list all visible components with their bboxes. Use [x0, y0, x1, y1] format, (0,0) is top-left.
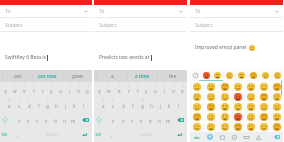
button[interactable]	[231, 92, 244, 102]
button[interactable]: b	[146, 112, 155, 127]
button[interactable]: z	[108, 112, 118, 127]
button[interactable]: Enter	[171, 127, 187, 142]
button[interactable]	[231, 81, 244, 92]
button[interactable]	[204, 92, 218, 102]
button[interactable]	[257, 122, 270, 132]
button[interactable]: #	[108, 97, 118, 112]
button[interactable]: 123	[0, 127, 9, 142]
button[interactable]	[244, 112, 257, 122]
button[interactable]: &	[43, 97, 52, 112]
button[interactable]: English	[121, 127, 171, 142]
button[interactable]: abc	[190, 132, 203, 142]
button[interactable]: 6	[142, 82, 151, 97]
button[interactable]	[218, 92, 231, 102]
button[interactable]: 7	[56, 82, 65, 97]
button[interactable]: Backspace	[78, 112, 92, 127]
button[interactable]	[231, 122, 244, 132]
button[interactable]	[270, 102, 283, 112]
button[interactable]: Category 2	[216, 132, 228, 142]
button[interactable]	[270, 81, 283, 92]
button[interactable]: n	[155, 112, 164, 127]
button[interactable]	[257, 112, 270, 122]
button[interactable]: c	[128, 112, 137, 127]
button[interactable]	[257, 92, 270, 102]
button[interactable]: Subject	[0, 18, 92, 32]
button[interactable]	[244, 122, 257, 132]
button[interactable]	[244, 102, 257, 112]
button[interactable]: Category 4	[240, 132, 252, 142]
button[interactable]: out	[3, 70, 32, 82]
button[interactable]: n	[60, 112, 69, 127]
button[interactable]	[231, 112, 244, 122]
button[interactable]: Backspace	[271, 132, 283, 142]
button[interactable]: 1	[94, 82, 104, 97]
button[interactable]: b	[51, 112, 60, 127]
button[interactable]	[201, 69, 212, 81]
button[interactable]: -	[147, 97, 156, 112]
button[interactable]: k	[70, 97, 79, 112]
button[interactable]	[204, 112, 218, 122]
button[interactable]: +	[61, 97, 70, 112]
button[interactable]	[204, 102, 218, 112]
button[interactable]: z	[14, 112, 24, 127]
button[interactable]: _	[34, 97, 43, 112]
button[interactable]: Smileys	[203, 132, 216, 142]
button[interactable]: 4	[124, 82, 133, 97]
button[interactable]: 3	[20, 82, 29, 97]
button[interactable]: l	[174, 97, 183, 112]
button[interactable]: 2	[10, 82, 20, 97]
button[interactable]: Enter	[76, 127, 92, 142]
button[interactable]: Category 3	[228, 132, 240, 142]
button[interactable]	[270, 112, 283, 122]
button[interactable]: Shift	[0, 112, 10, 127]
button[interactable]: 3	[114, 82, 124, 97]
button[interactable]: 2	[104, 82, 114, 97]
button[interactable]: To	[0, 5, 92, 18]
button[interactable]: l	[79, 97, 88, 112]
button[interactable]: English	[27, 127, 76, 142]
button[interactable]: m	[164, 112, 173, 127]
button[interactable]: 5	[38, 82, 47, 97]
button[interactable]: k	[165, 97, 174, 112]
button[interactable]: a	[97, 70, 127, 82]
button[interactable]: Backspace	[173, 112, 187, 127]
button[interactable]: 123	[94, 127, 103, 142]
button[interactable]: $	[118, 97, 128, 112]
button[interactable]	[190, 81, 204, 92]
button[interactable]: Shift	[94, 112, 104, 127]
button[interactable]: great	[63, 70, 92, 82]
button[interactable]: 8	[160, 82, 169, 97]
button[interactable]	[223, 69, 235, 81]
button[interactable]: a time	[128, 70, 157, 82]
button[interactable]: 8	[65, 82, 74, 97]
button[interactable]: 7	[151, 82, 160, 97]
button[interactable]: 4	[29, 82, 38, 97]
button[interactable]: -	[52, 97, 61, 112]
button[interactable]	[218, 102, 231, 112]
button[interactable]	[212, 69, 223, 81]
button[interactable]: +	[156, 97, 165, 112]
button[interactable]: 5	[133, 82, 142, 97]
button[interactable]: v	[42, 112, 51, 127]
button[interactable]	[190, 122, 204, 132]
button[interactable]: @	[4, 97, 14, 112]
button[interactable]	[204, 122, 218, 132]
button[interactable]	[190, 102, 204, 112]
button[interactable]: 6	[47, 82, 56, 97]
button[interactable]	[270, 92, 283, 102]
button[interactable]: c	[33, 112, 42, 127]
button[interactable]	[218, 112, 231, 122]
button[interactable]: 9	[169, 82, 178, 97]
button[interactable]: 1	[0, 82, 10, 97]
button[interactable]: m	[69, 112, 78, 127]
button[interactable]	[257, 81, 270, 92]
button[interactable]	[257, 102, 270, 112]
button[interactable]	[259, 69, 271, 81]
button[interactable]: &	[138, 97, 147, 112]
button[interactable]: Category 5	[252, 132, 264, 142]
button[interactable]: x	[118, 112, 128, 127]
button[interactable]: _	[128, 97, 138, 112]
button[interactable]: $	[24, 97, 34, 112]
button[interactable]: v	[137, 112, 146, 127]
